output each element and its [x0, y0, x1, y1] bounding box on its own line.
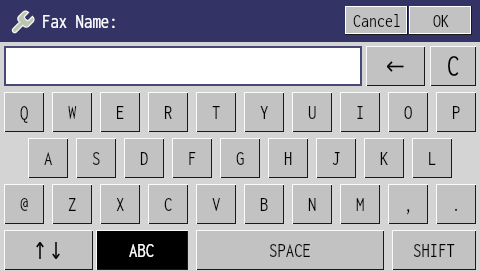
- button[interactable]: ABC: [96, 230, 188, 270]
- button[interactable]: C: [148, 184, 188, 224]
- button[interactable]: @: [4, 184, 44, 224]
- button[interactable]: X: [100, 184, 140, 224]
- staticText: V: [212, 193, 221, 215]
- staticText: D: [140, 147, 149, 169]
- staticText: B: [260, 193, 269, 215]
- button[interactable]: R: [148, 92, 188, 132]
- button[interactable]: Move cursor up or down: [4, 230, 93, 270]
- button[interactable]: O: [388, 92, 428, 132]
- staticText: I: [356, 101, 365, 123]
- button[interactable]: B: [244, 184, 284, 224]
- staticText: SPACE: [269, 239, 311, 261]
- button[interactable]: U: [292, 92, 332, 132]
- button[interactable]: L: [412, 138, 452, 178]
- staticText: Cancel: [353, 10, 401, 31]
- staticText: J: [332, 147, 341, 169]
- staticText: C: [447, 49, 460, 82]
- staticText: G: [236, 147, 245, 169]
- staticText: W: [68, 101, 77, 123]
- staticText: R: [164, 101, 173, 123]
- button[interactable]: J: [316, 138, 356, 178]
- staticText: Z: [68, 193, 77, 215]
- staticText: SHIFT: [413, 239, 455, 261]
- button[interactable]: Z: [52, 184, 92, 224]
- button[interactable]: Y: [244, 92, 284, 132]
- staticText: O: [404, 101, 413, 123]
- button[interactable]: P: [436, 92, 476, 132]
- staticText: E: [116, 101, 125, 123]
- button[interactable]: SHIFT: [392, 230, 476, 270]
- button[interactable]: S: [76, 138, 116, 178]
- staticText: .: [452, 193, 461, 215]
- staticText: K: [380, 147, 389, 169]
- button[interactable]: I: [340, 92, 380, 132]
- staticText: U: [308, 101, 317, 123]
- staticText: OK: [433, 10, 449, 31]
- button[interactable]: Q: [4, 92, 44, 132]
- button[interactable]: ,: [388, 184, 428, 224]
- button[interactable]: W: [52, 92, 92, 132]
- staticText: M: [356, 193, 365, 215]
- button[interactable]: A: [28, 138, 68, 178]
- button[interactable]: OK: [409, 6, 472, 35]
- button[interactable]: V: [196, 184, 236, 224]
- staticText: Fax Name:: [42, 10, 118, 32]
- staticText: Q: [20, 101, 29, 123]
- staticText: @: [20, 193, 29, 215]
- button[interactable]: K: [364, 138, 404, 178]
- staticText: X: [116, 193, 125, 215]
- button[interactable]: E: [100, 92, 140, 132]
- staticText: H: [284, 147, 293, 169]
- staticText: S: [92, 147, 101, 169]
- staticText: A: [44, 147, 53, 169]
- button[interactable]: N: [292, 184, 332, 224]
- staticText: Y: [260, 101, 269, 123]
- button[interactable]: C: [430, 46, 476, 86]
- staticText: N: [308, 193, 317, 215]
- button[interactable]: M: [340, 184, 380, 224]
- button[interactable]: Cancel: [345, 6, 408, 35]
- button[interactable]: D: [124, 138, 164, 178]
- staticText: P: [452, 101, 461, 123]
- button[interactable]: G: [220, 138, 260, 178]
- staticText: C: [164, 193, 173, 215]
- button[interactable]: SPACE: [196, 230, 384, 270]
- button[interactable]: .: [436, 184, 476, 224]
- button[interactable]: Backspace: [366, 46, 425, 86]
- staticText: ABC: [129, 239, 155, 261]
- button[interactable]: H: [268, 138, 308, 178]
- button[interactable]: F: [172, 138, 212, 178]
- staticText: ,: [404, 193, 413, 215]
- button[interactable]: T: [196, 92, 236, 132]
- staticText: T: [212, 101, 221, 123]
- staticText: L: [428, 147, 437, 169]
- staticText: F: [188, 147, 197, 169]
